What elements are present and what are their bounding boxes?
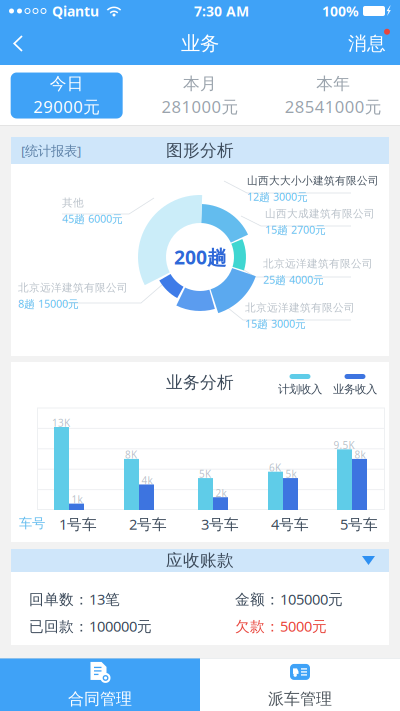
staticText: 8K — [125, 448, 137, 461]
staticText: 5号车 — [340, 514, 378, 534]
staticText: 北京远洋建筑有限公司 — [18, 281, 128, 294]
button[interactable]: 今日 — [0, 65, 133, 126]
staticText: 其他 — [62, 196, 84, 209]
staticText: 已回款：100000元 — [29, 616, 152, 636]
staticText: 28541000元 — [285, 95, 382, 118]
staticText: 15趟 3000元 — [245, 316, 306, 331]
staticText: 29000元 — [33, 95, 100, 118]
staticText: 山西大大小小建筑有限公司 — [247, 174, 379, 187]
staticText: [统计报表] — [21, 141, 81, 160]
staticText: 8趟 15000元 — [18, 296, 79, 311]
staticText: 今日 — [50, 73, 84, 94]
staticText: 3号车 — [201, 514, 239, 534]
staticText: 7:30 AM — [194, 1, 249, 21]
staticText: 欠款：5000元 — [235, 616, 327, 636]
button[interactable]: 应收账款 — [11, 549, 389, 572]
staticText: 消息 — [348, 32, 386, 55]
staticText: 计划收入 — [278, 382, 322, 396]
staticText: 山西大成建筑有限公司 — [265, 207, 375, 220]
staticText: 车号 — [19, 515, 45, 532]
staticText: 6K — [269, 461, 281, 474]
staticText: 9.5K — [333, 438, 354, 452]
staticText: 本年 — [316, 73, 350, 94]
staticText: 5K — [199, 467, 211, 481]
staticText: 金额：105000元 — [235, 589, 343, 609]
staticText: 15趟 2700元 — [265, 222, 326, 237]
staticText: 回单数：13笔 — [29, 589, 120, 609]
button[interactable]: 本月 — [133, 65, 267, 126]
staticText: 13K — [52, 416, 70, 430]
staticText: 应收账款 — [166, 550, 234, 571]
staticText: 1k — [71, 493, 82, 506]
button[interactable]: Back — [0, 22, 37, 65]
staticText: 合同管理 — [68, 689, 132, 709]
staticText: Qiantu — [52, 1, 99, 21]
staticText: 2号车 — [129, 514, 167, 534]
button[interactable]: 派车管理 — [200, 658, 400, 711]
staticText: 派车管理 — [268, 689, 332, 709]
button[interactable]: 本年 — [267, 65, 400, 126]
staticText: 281000元 — [161, 95, 238, 118]
staticText: 4号车 — [271, 514, 309, 534]
staticText: 45趟 6000元 — [62, 211, 123, 226]
staticText: 业务分析 — [166, 372, 234, 393]
staticText: 北京远洋建筑有限公司 — [245, 301, 355, 314]
button[interactable]: 合同管理 — [0, 658, 200, 711]
staticText: 12趟 3000元 — [247, 189, 308, 204]
staticText: 200趟 — [174, 244, 226, 270]
staticText: 业务 — [181, 31, 219, 56]
staticText: 25趟 4000元 — [263, 272, 324, 287]
staticText: 图形分析 — [166, 140, 234, 161]
staticText: 本月 — [183, 73, 217, 94]
staticText: 5k — [285, 467, 296, 481]
staticText: 4k — [141, 473, 152, 487]
button[interactable]: 消息 — [334, 19, 400, 68]
staticText: 8k — [354, 448, 365, 461]
staticText: 业务收入 — [333, 382, 377, 396]
staticText: 2k — [215, 486, 226, 500]
staticText: 1号车 — [59, 514, 97, 534]
staticText: 100% — [322, 1, 359, 21]
staticText: 北京远洋建筑有限公司 — [263, 257, 373, 270]
